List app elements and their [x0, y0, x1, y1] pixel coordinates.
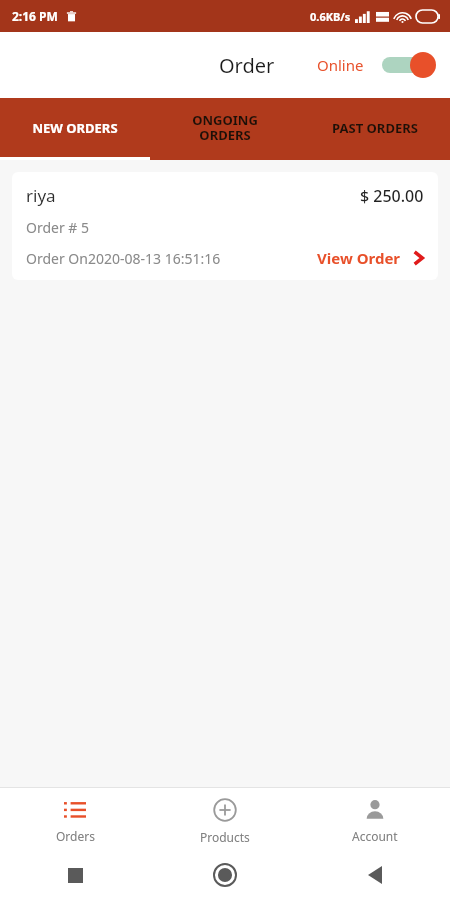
staticText: ONGOING ORDERS — [192, 111, 258, 144]
staticText: PAST ORDERS — [332, 119, 418, 137]
button[interactable]: Toggle online status — [380, 49, 438, 81]
staticText: 2:16 PM — [12, 8, 58, 24]
button[interactable]: Orders — [0, 788, 150, 850]
button[interactable]: Home — [150, 850, 300, 900]
button[interactable]: Products — [150, 788, 300, 850]
button[interactable]: View Order — [317, 248, 424, 268]
button[interactable]: Back — [300, 850, 450, 900]
staticText: Account — [352, 828, 398, 844]
staticText: Products — [200, 829, 250, 845]
button[interactable]: Recents — [0, 850, 150, 900]
button[interactable]: NEW ORDERS — [0, 98, 150, 157]
button[interactable]: Account — [300, 788, 450, 850]
staticText: Order — [219, 52, 275, 79]
staticText: riya — [26, 184, 56, 207]
staticText: Order # 5 — [26, 218, 90, 237]
button[interactable]: PAST ORDERS — [300, 98, 450, 157]
staticText: $ 250.00 — [360, 185, 424, 207]
staticText: NEW ORDERS — [32, 119, 118, 137]
staticText: Online — [317, 55, 364, 75]
staticText: View Order — [317, 248, 401, 268]
button[interactable]: ONGOING ORDERS — [150, 98, 300, 157]
staticText: Orders — [56, 828, 95, 844]
staticText: Order On2020-08-13 16:51:16 — [26, 249, 221, 268]
button[interactable]: riya — [12, 172, 438, 280]
staticText: 0.6KB/s — [310, 9, 351, 24]
